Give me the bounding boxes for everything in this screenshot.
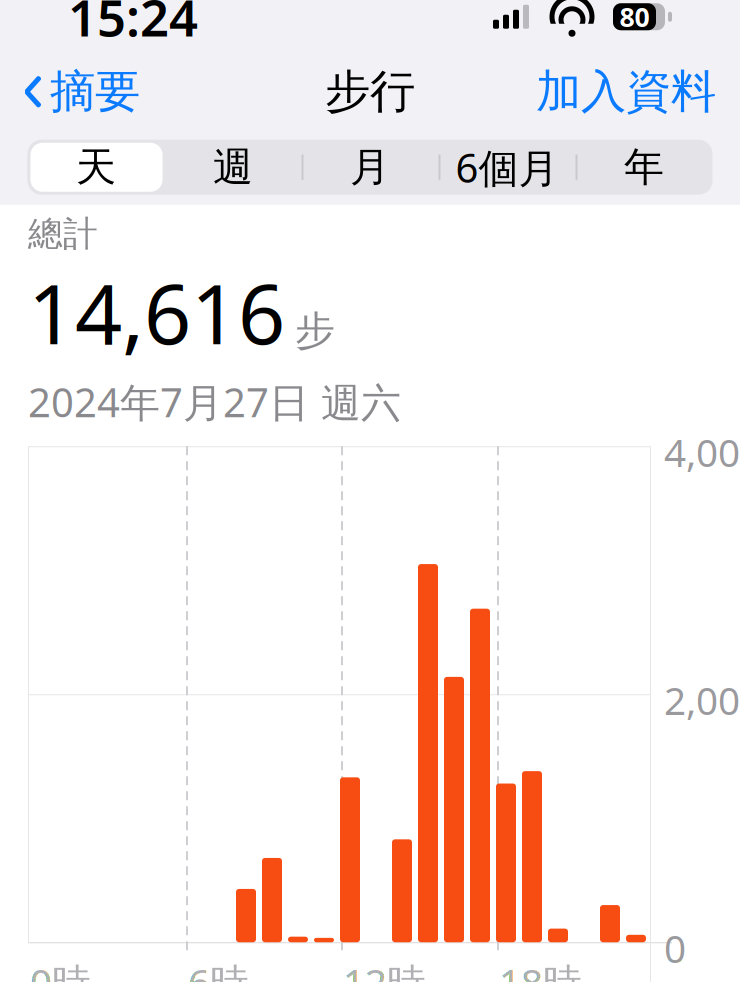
button[interactable]: 摘要 [20, 56, 144, 128]
staticText: 月 [350, 143, 390, 192]
button[interactable]: 加入資料 [532, 56, 720, 128]
staticText: 0 [664, 922, 686, 973]
staticText: 週 [213, 143, 253, 192]
button[interactable]: 週 [164, 140, 301, 195]
staticText: 6時 [188, 956, 249, 982]
button[interactable]: 年 [575, 140, 712, 195]
staticText: 4,000 [664, 426, 740, 477]
staticText: 2024年7月27日 週六 [28, 375, 401, 428]
staticText: 15:24 [68, 0, 198, 50]
button[interactable]: 月 [301, 140, 438, 195]
staticText: 總計 [28, 213, 98, 255]
staticText: 加入資料 [536, 64, 716, 120]
staticText: 步 [295, 306, 335, 355]
staticText: 14,616 [28, 257, 285, 367]
staticText: 6個月 [455, 141, 558, 194]
staticText: 年 [624, 143, 664, 192]
button[interactable]: 6個月 [438, 140, 575, 195]
staticText: 天 [76, 143, 116, 192]
button[interactable]: 天 [27, 140, 164, 195]
staticText: 步行 [325, 64, 415, 120]
staticText: 12時 [343, 956, 426, 982]
staticText: 80 [619, 0, 649, 34]
staticText: 2,000 [664, 674, 740, 725]
staticText: 摘要 [50, 64, 140, 120]
staticText: 18時 [499, 956, 582, 982]
staticText: 0時 [30, 956, 91, 982]
